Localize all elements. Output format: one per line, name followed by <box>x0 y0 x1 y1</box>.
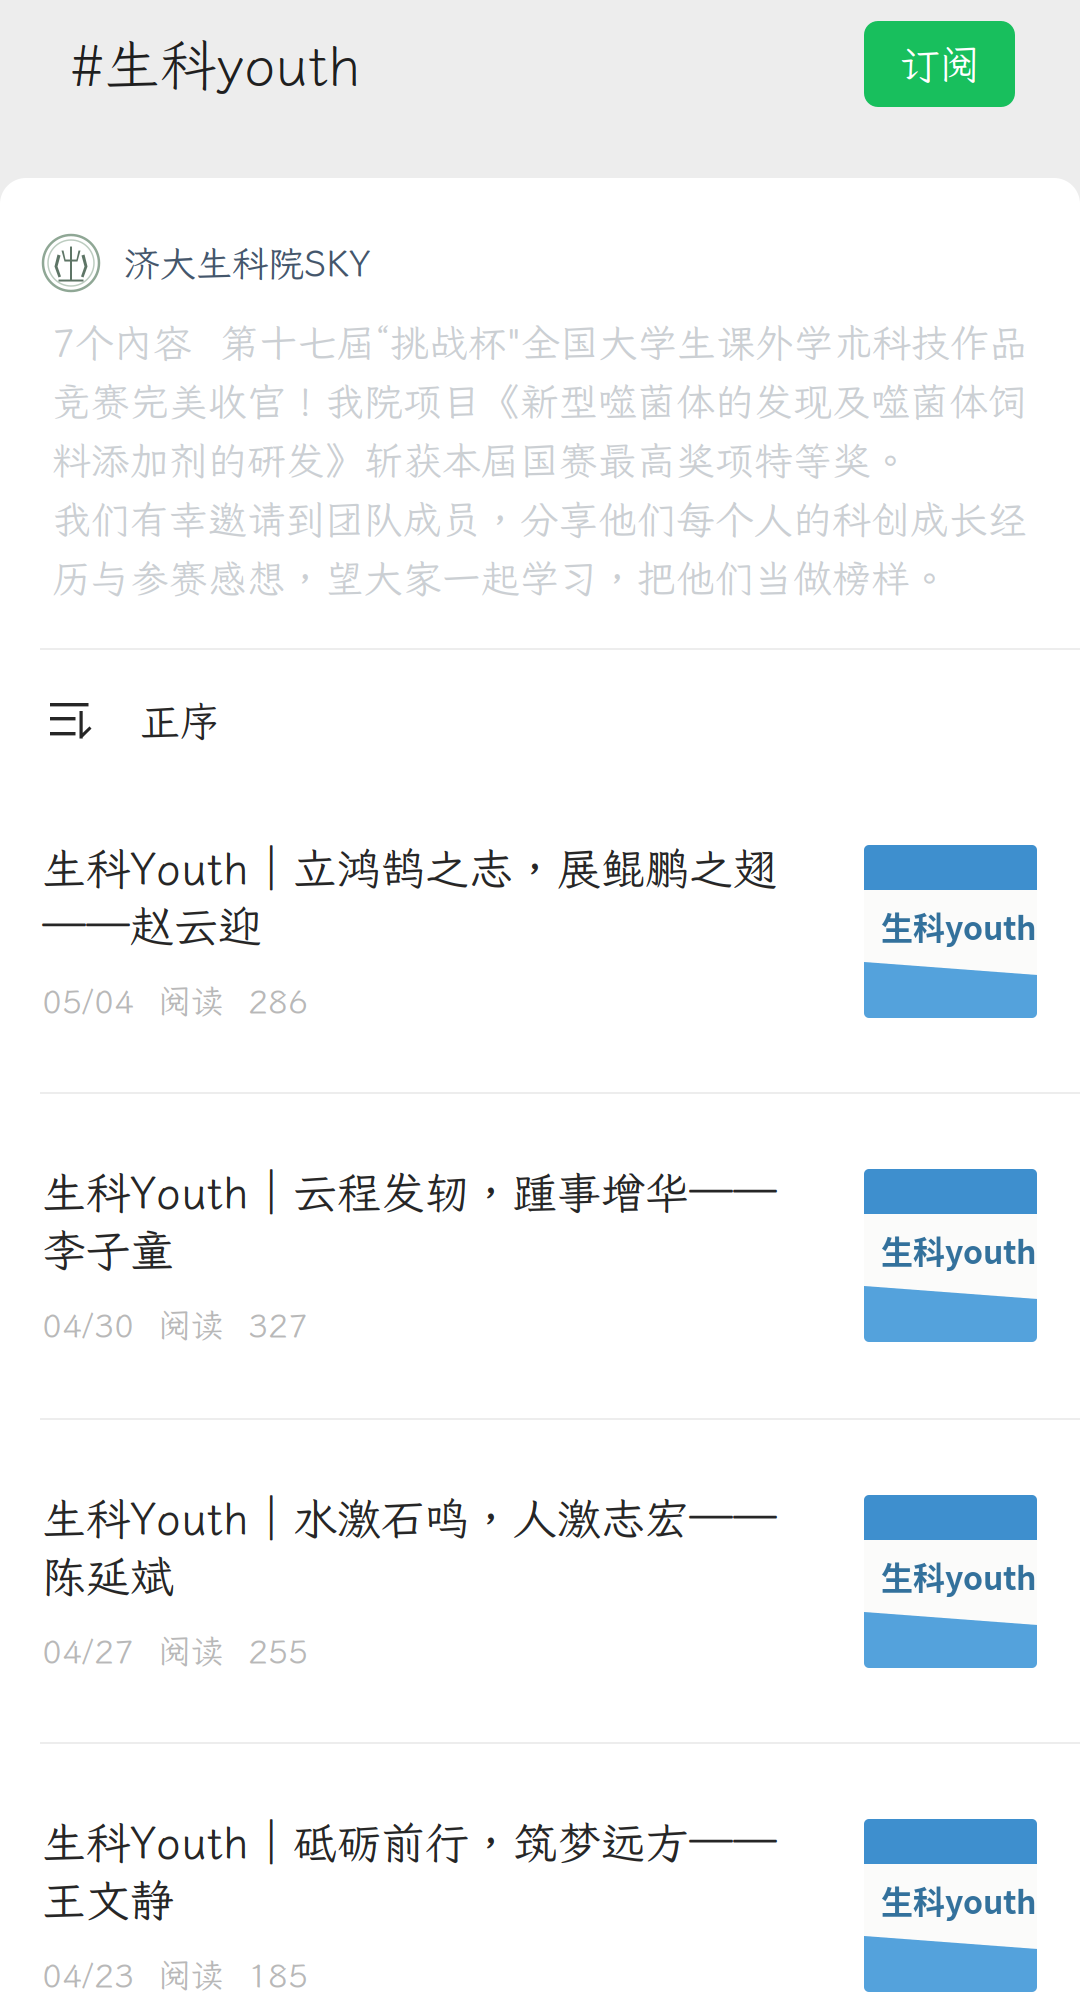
staticText: 生科youth <box>881 1877 1036 1923</box>
staticText: 济大生科院SKY <box>124 239 371 287</box>
staticText: 04/23 阅读 185 <box>42 1953 308 1997</box>
button[interactable]: 生科Youth｜水激石鸣，人激志宏——陈延斌 <box>0 1420 1080 1742</box>
staticText: 生科youth <box>881 1227 1036 1273</box>
button[interactable]: 订阅 <box>864 21 1015 107</box>
staticText: 7个内容 第十七届“挑战杯"全国大学生课外学术科技作品竞赛完美收官！我院项目《新… <box>52 317 1028 604</box>
button[interactable]: 正序 <box>0 650 1080 792</box>
staticText: 04/30 阅读 327 <box>42 1303 308 1347</box>
staticText: #生科youth <box>70 27 361 101</box>
staticText: 生科youth <box>881 903 1036 949</box>
button[interactable]: 生科Youth｜云程发轫，踵事增华——李子童 <box>0 1094 1080 1418</box>
staticText: 正序 <box>140 695 220 747</box>
staticText: 生科Youth｜立鸿鹄之志，展鲲鹏之翅——赵云迎 <box>42 839 777 955</box>
staticText: 生科Youth｜云程发轫，踵事增华——李子童 <box>42 1163 777 1279</box>
staticText: 生科Youth｜砥砺前行，筑梦远方——王文静 <box>42 1813 777 1929</box>
staticText: 生科Youth｜水激石鸣，人激志宏——陈延斌 <box>42 1489 777 1605</box>
staticText: 订阅 <box>899 38 979 90</box>
button[interactable]: 生科Youth｜砥砺前行，筑梦远方——王文静 <box>0 1744 1080 2015</box>
staticText: 04/27 阅读 255 <box>42 1629 308 1673</box>
button[interactable]: 生科Youth｜立鸿鹄之志，展鲲鹏之翅——赵云迎 <box>0 792 1080 1092</box>
staticText: 生科youth <box>881 1553 1036 1599</box>
staticText: 05/04 阅读 286 <box>42 979 308 1023</box>
